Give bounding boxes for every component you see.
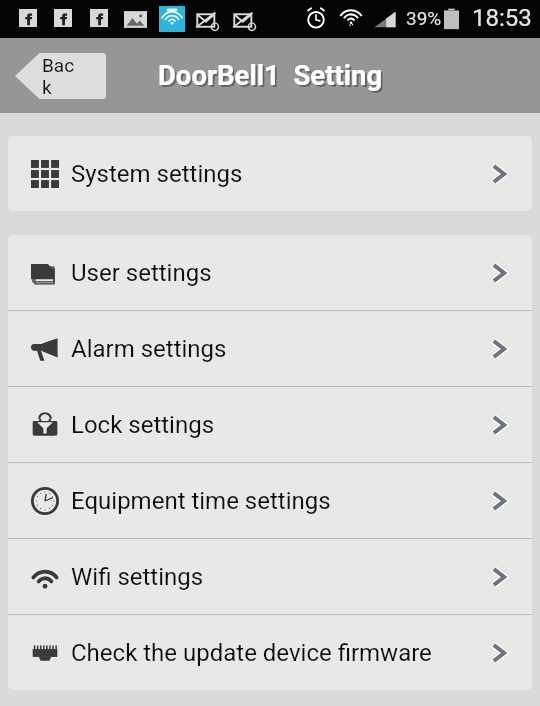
staticText: Equipment time settings	[71, 487, 331, 515]
button[interactable]: Wifi settings	[8, 539, 532, 614]
button[interactable]: System settings	[8, 136, 532, 211]
staticText: 18:53	[472, 4, 532, 32]
button[interactable]: User settings	[8, 235, 532, 310]
staticText: DoorBell1 Setting	[160, 61, 385, 93]
button[interactable]: Equipment time settings	[8, 463, 532, 538]
staticText: Lock settings	[71, 411, 215, 439]
staticText: DoorBell1 Setting	[158, 59, 383, 91]
button[interactable]: Check the update device firmware	[8, 615, 532, 690]
staticText: Check the update device firmware	[71, 639, 432, 667]
staticText: Alarm settings	[71, 335, 227, 363]
staticText: 39%	[406, 7, 442, 29]
button[interactable]: Lock settings	[8, 387, 532, 462]
button[interactable]: Alarm settings	[8, 311, 532, 386]
button[interactable]: Back	[15, 53, 106, 99]
staticText: Wifi settings	[71, 563, 204, 591]
staticText: User settings	[71, 259, 212, 287]
staticText: System settings	[71, 160, 243, 188]
staticText: Back	[42, 54, 80, 98]
